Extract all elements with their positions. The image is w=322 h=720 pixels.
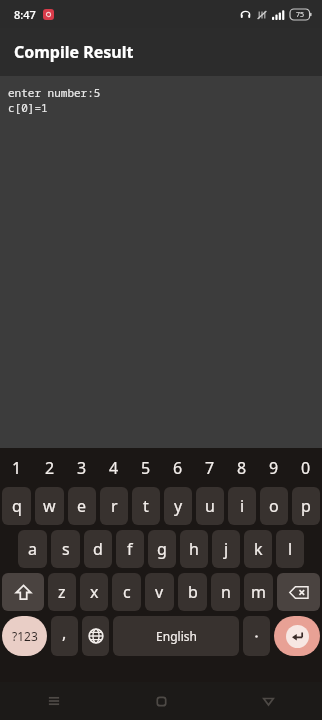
button[interactable]: ?123 [2,616,47,656]
button[interactable]: c [112,573,141,611]
staticText: q [12,495,22,517]
button[interactable]: y [164,487,192,525]
staticText: u [205,495,215,517]
staticText: z [58,581,66,603]
staticText: n [221,581,231,603]
button[interactable]: 9 [258,453,290,482]
staticText: h [189,538,199,560]
button[interactable]: q [2,487,31,525]
staticText: 2 [45,457,55,479]
button[interactable]: 7 [194,453,226,482]
button[interactable]: p [292,487,320,525]
staticText: k [254,538,263,560]
staticText: i [240,495,245,517]
button[interactable]: j [212,530,240,568]
button[interactable]: 1 [0,453,33,482]
button[interactable]: 8 [226,453,258,482]
button[interactable]: l [276,530,304,568]
staticText: t [143,495,149,517]
staticText: Compile Result [14,41,134,63]
button[interactable]: Change language [82,616,109,656]
button[interactable]: 2 [33,453,66,482]
staticText: y [174,495,183,517]
staticText: f [127,538,133,560]
button[interactable]: e [68,487,96,525]
staticText: enter number:5 [8,85,101,100]
button[interactable]: g [148,530,176,568]
staticText: j [224,538,229,560]
staticText: 1 [12,457,22,479]
staticText: x [90,581,99,603]
staticText: c [123,581,131,603]
staticText: 3 [77,457,87,479]
staticText: d [93,538,103,560]
button[interactable]: x [80,573,108,611]
staticText: w [43,495,56,517]
staticText: 5 [141,457,151,479]
button[interactable]: s [51,530,80,568]
staticText: 7 [205,457,215,479]
button[interactable]: o [260,487,288,525]
staticText: g [157,538,167,560]
button[interactable]: Recents [0,682,108,720]
staticText: r [111,495,118,517]
staticText: c[0]=1 [8,100,48,115]
button[interactable]: Comma [51,616,78,656]
staticText: l [288,538,293,560]
staticText: 0 [301,457,311,479]
staticText: 8:47 [14,7,36,22]
button[interactable]: u [196,487,224,525]
button[interactable]: 3 [66,453,98,482]
button[interactable]: t [132,487,160,525]
button[interactable]: b [178,573,207,611]
button[interactable]: d [84,530,112,568]
button[interactable]: Period [243,616,270,656]
staticText: s [62,538,70,560]
button[interactable]: v [145,573,174,611]
button[interactable]: f [116,530,144,568]
button[interactable]: a [18,530,47,568]
staticText: b [188,581,198,603]
staticText: p [301,495,311,517]
button[interactable]: 4 [98,453,130,482]
button[interactable]: Home [108,682,215,720]
staticText: e [77,495,87,517]
button[interactable]: k [244,530,272,568]
button[interactable]: r [100,487,128,525]
staticText: a [28,538,37,560]
button[interactable]: h [180,530,208,568]
staticText: v [155,581,164,603]
button[interactable]: w [35,487,64,525]
button[interactable]: Shift [2,573,44,611]
button[interactable]: 0 [290,453,322,482]
button[interactable]: Back [215,682,322,720]
staticText: 8 [237,457,247,479]
button[interactable]: n [211,573,240,611]
button[interactable]: English [113,616,239,656]
button[interactable]: 5 [130,453,162,482]
staticText: o [269,495,279,517]
staticText: 9 [269,457,279,479]
button[interactable]: 6 [162,453,194,482]
staticText: English [156,628,197,644]
button[interactable]: Backspace [277,573,320,611]
staticText: , [62,622,67,644]
staticText: 4 [109,457,119,479]
staticText: 75 [296,10,305,20]
button[interactable]: i [228,487,256,525]
button[interactable]: Enter [274,616,320,656]
staticText: 6 [173,457,183,479]
button[interactable]: z [48,573,76,611]
button[interactable]: m [244,573,273,611]
staticText: ?123 [12,628,38,644]
staticText: m [251,581,266,603]
